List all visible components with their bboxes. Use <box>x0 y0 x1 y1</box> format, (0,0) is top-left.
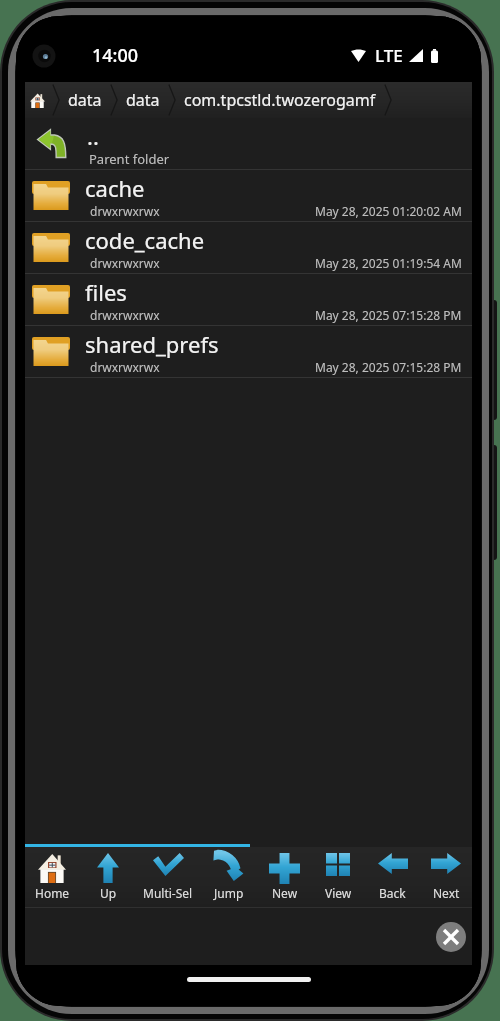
staticText: drwxrwxrwx <box>90 255 160 271</box>
staticText: May 28, 2025 07:15:28 PM <box>315 307 462 323</box>
button[interactable]: Home <box>25 82 50 118</box>
staticText: May 28, 2025 01:19:54 AM <box>315 255 462 271</box>
staticText: May 28, 2025 07:15:28 PM <box>315 359 462 375</box>
button[interactable]: View <box>311 847 365 907</box>
staticText: code_cache <box>85 225 205 255</box>
button[interactable]: com.tpcstld.twozerogamf <box>178 82 382 118</box>
button[interactable]: Up <box>79 847 137 907</box>
staticText: New <box>272 885 298 901</box>
button[interactable]: Back <box>365 847 420 907</box>
staticText: files <box>85 277 127 307</box>
staticText: drwxrwxrwx <box>90 359 160 375</box>
staticText: drwxrwxrwx <box>90 307 160 323</box>
staticText: Home <box>35 885 70 901</box>
button[interactable]: Multi-Sel <box>137 847 199 907</box>
button[interactable]: Jump <box>199 847 258 907</box>
staticText: com.tpcstld.twozerogamf <box>184 89 376 111</box>
staticText: May 28, 2025 01:20:02 AM <box>315 203 462 219</box>
button[interactable]: Home <box>25 847 79 907</box>
button[interactable]: Next <box>420 847 472 907</box>
staticText: shared_prefs <box>85 329 219 359</box>
staticText: Parent folder <box>89 150 170 168</box>
staticText: Up <box>100 885 117 901</box>
button[interactable]: New <box>258 847 311 907</box>
button[interactable]: files <box>25 274 472 325</box>
staticText: Back <box>379 885 406 901</box>
staticText: data <box>126 89 160 111</box>
staticText: LTE <box>375 44 403 67</box>
staticText: data <box>68 89 102 111</box>
staticText: Multi-Sel <box>143 885 193 901</box>
button[interactable]: shared_prefs <box>25 326 472 377</box>
staticText: Next <box>433 885 460 901</box>
staticText: drwxrwxrwx <box>90 203 160 219</box>
staticText: Jump <box>214 885 244 901</box>
button[interactable]: .. <box>25 118 472 169</box>
staticText: cache <box>85 173 145 203</box>
button[interactable]: data <box>62 82 108 118</box>
button[interactable]: code_cache <box>25 222 472 273</box>
button[interactable]: cache <box>25 170 472 221</box>
button[interactable]: Close <box>436 922 466 952</box>
staticText: 14:00 <box>92 43 139 68</box>
button[interactable]: data <box>120 82 166 118</box>
staticText: View <box>325 885 352 901</box>
staticText: .. <box>87 121 99 151</box>
